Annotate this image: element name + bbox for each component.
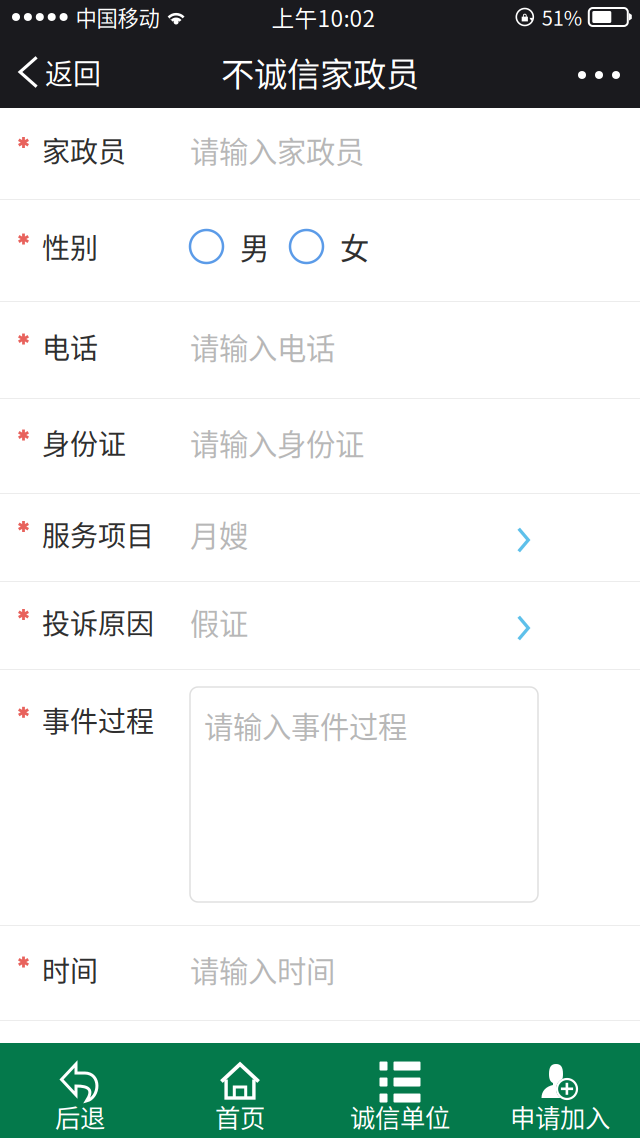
button[interactable]: 申请加入: [480, 1043, 640, 1138]
staticText: 性别: [42, 226, 98, 267]
staticText: 上午10:02: [271, 1, 375, 33]
staticText: 时间: [42, 949, 98, 990]
staticText: 请输入时间: [190, 948, 335, 991]
staticText: 男: [240, 225, 269, 268]
staticText: 投诉原因: [42, 602, 154, 642]
staticText: 身份证: [42, 422, 126, 463]
button[interactable]: 女: [290, 218, 369, 274]
staticText: 家政员: [42, 130, 126, 170]
staticText: 请输入事件过程: [204, 704, 407, 746]
staticText: 月嫂: [190, 513, 248, 555]
staticText: 中国移动: [76, 2, 160, 32]
staticText: 电话: [42, 326, 98, 367]
button[interactable]: 后退: [0, 1043, 160, 1138]
staticText: 返回: [45, 52, 101, 92]
staticText: 请输入家政员: [190, 129, 364, 171]
button[interactable]: 诚信单位: [320, 1043, 480, 1138]
button[interactable]: 首页: [160, 1043, 320, 1138]
staticText: 51%: [542, 2, 582, 31]
staticText: 女: [340, 225, 369, 268]
staticText: 不诚信家政员: [221, 48, 419, 96]
staticText: 事件过程: [42, 699, 154, 740]
staticText: 诚信单位: [350, 1098, 450, 1135]
button[interactable]: 投诉原因: [0, 582, 640, 669]
staticText: 服务项目: [42, 514, 154, 554]
staticText: 假证: [190, 601, 248, 643]
staticText: 后退: [55, 1098, 105, 1135]
staticText: 请输入身份证: [190, 421, 364, 464]
button[interactable]: More options: [556, 39, 640, 105]
staticText: 请输入电话: [190, 325, 335, 368]
staticText: 申请加入: [510, 1098, 610, 1135]
button[interactable]: 请输入事件过程: [190, 687, 538, 902]
staticText: 首页: [215, 1098, 265, 1135]
button[interactable]: 服务项目: [0, 494, 640, 581]
button[interactable]: 男: [190, 218, 269, 274]
button[interactable]: 返回: [0, 39, 117, 105]
